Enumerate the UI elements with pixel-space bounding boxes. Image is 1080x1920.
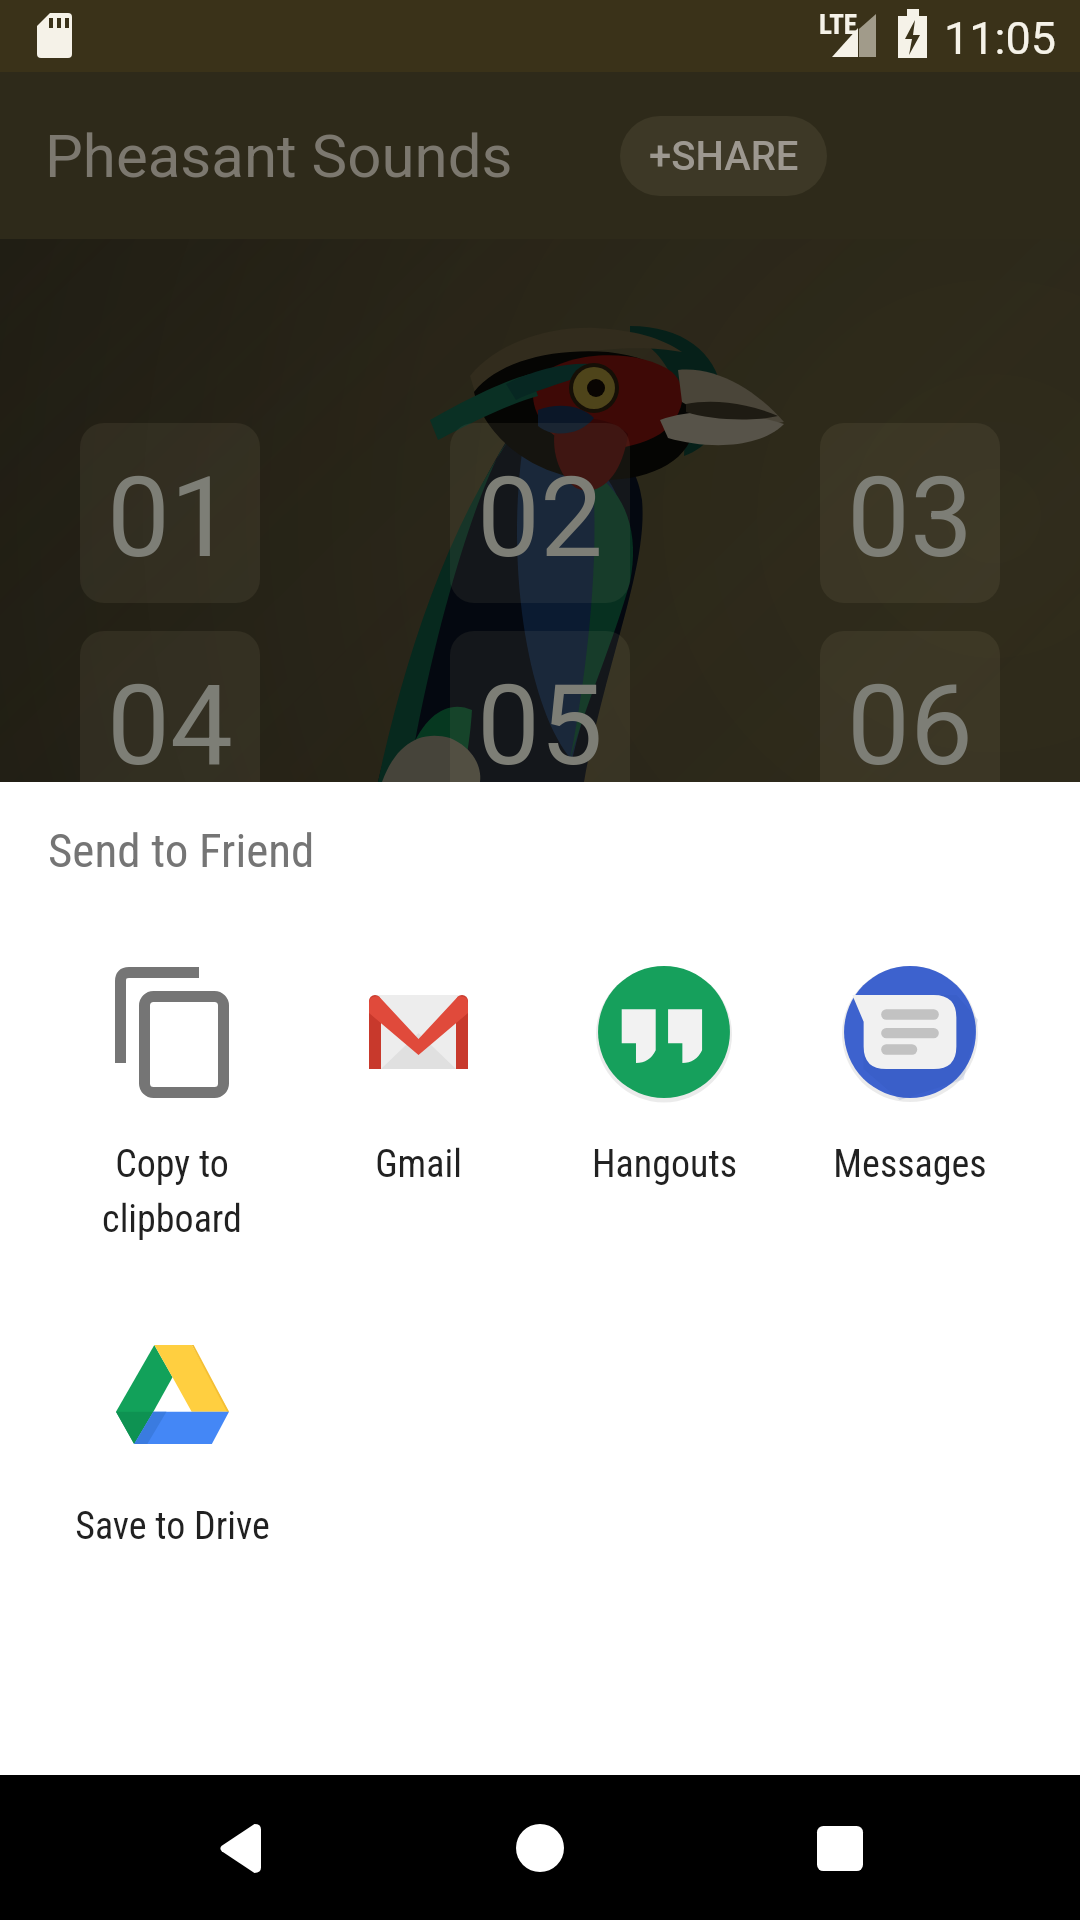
staticText: LTE bbox=[819, 9, 858, 41]
staticText: Send to Friend bbox=[48, 823, 315, 878]
button[interactable]: Save to Drive bbox=[49, 1319, 295, 1549]
button[interactable]: 05 bbox=[450, 631, 630, 811]
staticText: 01 bbox=[107, 452, 233, 583]
button[interactable]: Home bbox=[480, 1788, 600, 1908]
button[interactable]: 03 bbox=[820, 423, 1000, 603]
button[interactable]: +SHARE bbox=[620, 116, 827, 196]
button[interactable]: Messages bbox=[787, 957, 1033, 1187]
staticText: Copy to clipboard bbox=[102, 1142, 242, 1241]
button[interactable]: Copy to clipboard bbox=[49, 957, 295, 1241]
staticText: 02 bbox=[477, 452, 603, 583]
staticText: Hangouts bbox=[592, 1142, 737, 1187]
button[interactable]: Hangouts bbox=[541, 957, 787, 1187]
button[interactable]: Recent apps bbox=[780, 1788, 900, 1908]
staticText: 03 bbox=[847, 452, 973, 583]
staticText: 05 bbox=[477, 660, 603, 791]
button[interactable]: 02 bbox=[450, 423, 630, 603]
staticText: Save to Drive bbox=[75, 1504, 270, 1549]
staticText: 06 bbox=[847, 660, 973, 791]
staticText: 04 bbox=[107, 660, 233, 791]
staticText: Gmail bbox=[375, 1142, 462, 1187]
staticText: Messages bbox=[833, 1142, 987, 1187]
staticText: 11:05 bbox=[944, 12, 1057, 65]
button[interactable]: Back bbox=[180, 1788, 300, 1908]
button[interactable]: Gmail bbox=[295, 957, 541, 1187]
button[interactable]: 04 bbox=[80, 631, 260, 811]
staticText: +SHARE bbox=[649, 133, 799, 180]
button[interactable]: 01 bbox=[80, 423, 260, 603]
button[interactable]: 06 bbox=[820, 631, 1000, 811]
staticText: Pheasant Sounds bbox=[45, 121, 513, 191]
